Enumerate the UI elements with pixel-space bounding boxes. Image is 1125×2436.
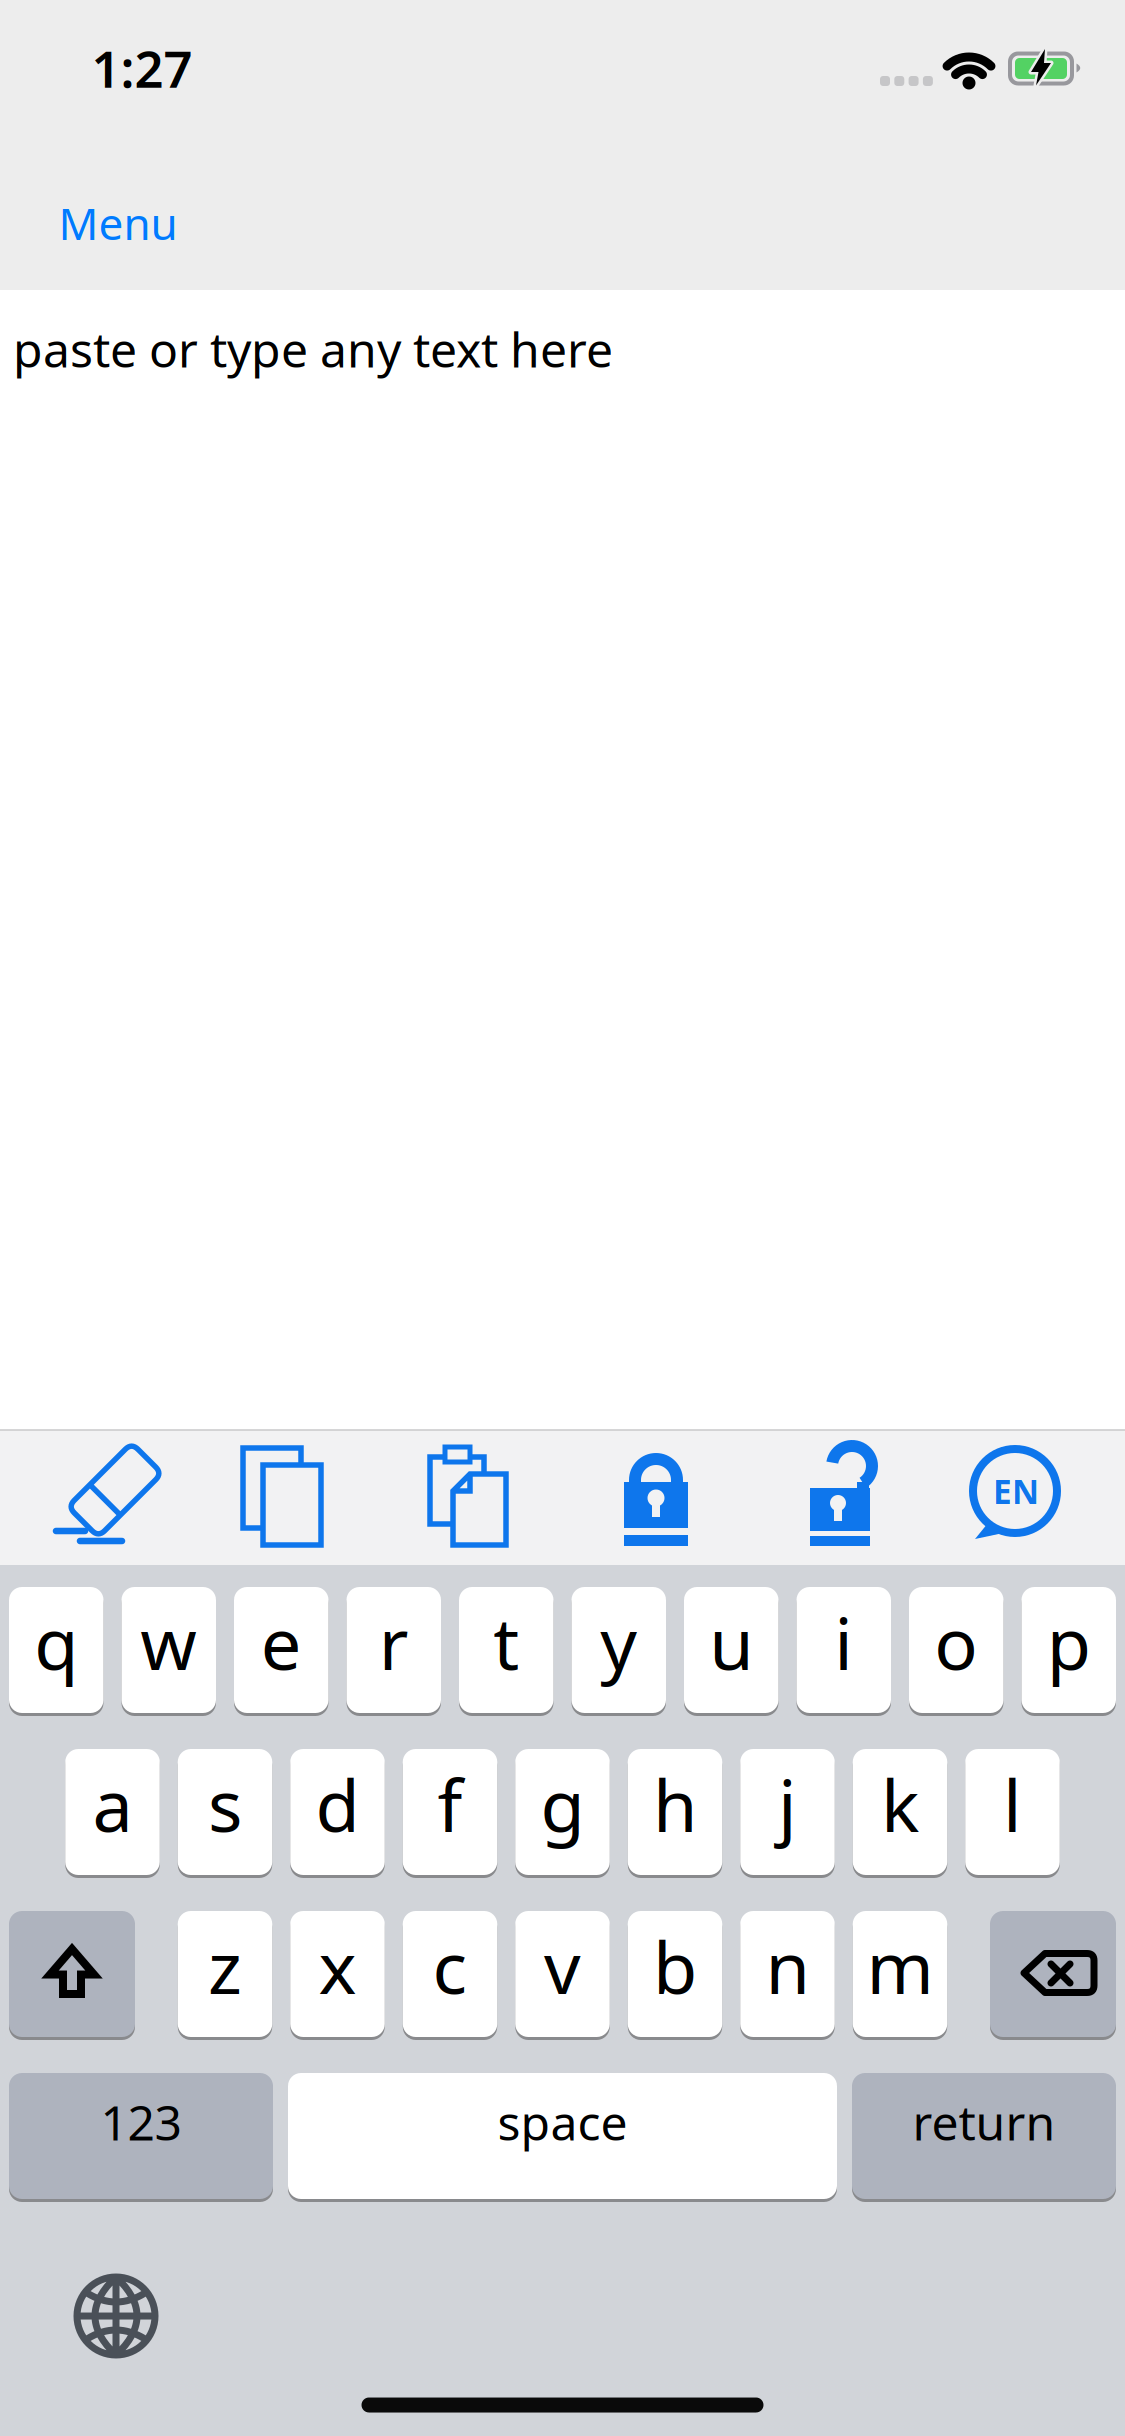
button[interactable]: m xyxy=(853,1909,947,2038)
staticText: l xyxy=(1003,1756,1022,1852)
staticText: p xyxy=(1047,1594,1091,1690)
button[interactable]: i xyxy=(796,1585,891,1714)
staticText: d xyxy=(315,1756,359,1852)
staticText: space xyxy=(497,2090,627,2154)
button[interactable]: a xyxy=(65,1747,160,1876)
staticText: r xyxy=(379,1594,409,1690)
staticText: b xyxy=(653,1918,697,2014)
button[interactable]: Copy xyxy=(226,1436,338,1556)
staticText: j xyxy=(778,1756,797,1852)
staticText: y xyxy=(600,1594,637,1690)
button[interactable]: e xyxy=(234,1585,328,1714)
button[interactable]: z xyxy=(178,1909,272,2038)
button[interactable]: h xyxy=(628,1747,722,1876)
button[interactable]: Language xyxy=(967,1445,1063,1545)
staticText: m xyxy=(866,1918,933,2014)
staticText: n xyxy=(765,1918,809,2014)
staticText: w xyxy=(140,1594,197,1690)
button[interactable]: Menu xyxy=(58,194,177,252)
staticText: g xyxy=(540,1756,584,1852)
button[interactable]: f xyxy=(403,1747,497,1876)
button[interactable]: o xyxy=(909,1585,1003,1714)
button[interactable]: Delete xyxy=(990,1909,1116,2038)
button[interactable]: x xyxy=(290,1909,385,2038)
button[interactable]: space xyxy=(288,2071,837,2200)
staticText: k xyxy=(881,1756,919,1852)
staticText: i xyxy=(834,1594,853,1690)
button[interactable]: Unlock xyxy=(810,1444,874,1546)
staticText: u xyxy=(709,1594,753,1690)
button[interactable]: q xyxy=(9,1585,103,1714)
button[interactable]: l xyxy=(965,1747,1060,1876)
button[interactable]: t xyxy=(459,1585,553,1714)
staticText: e xyxy=(261,1594,302,1690)
staticText: x xyxy=(318,1918,356,2014)
button[interactable]: s xyxy=(178,1747,272,1876)
button[interactable]: n xyxy=(740,1909,835,2038)
staticText: paste or type any text here xyxy=(13,317,613,381)
staticText: return xyxy=(912,2090,1055,2154)
button[interactable]: Next keyboard xyxy=(72,2272,160,2360)
staticText: 123 xyxy=(100,2090,181,2154)
button[interactable]: y xyxy=(571,1585,666,1714)
staticText: 1:27 xyxy=(91,34,192,102)
button[interactable]: r xyxy=(346,1585,441,1714)
button[interactable]: j xyxy=(740,1747,835,1876)
button[interactable]: u xyxy=(684,1585,778,1714)
button[interactable]: 123 xyxy=(9,2071,273,2200)
staticText: s xyxy=(208,1756,242,1852)
staticText: o xyxy=(934,1594,978,1690)
staticText: c xyxy=(432,1918,467,2014)
staticText: q xyxy=(34,1594,78,1690)
staticText: t xyxy=(493,1594,519,1690)
button[interactable]: d xyxy=(290,1747,385,1876)
button[interactable]: v xyxy=(515,1909,610,2038)
staticText: a xyxy=(92,1756,132,1852)
button[interactable]: Paste xyxy=(417,1440,517,1552)
staticText: EN xyxy=(993,1469,1039,1513)
button[interactable]: b xyxy=(628,1909,722,2038)
button[interactable]: c xyxy=(403,1909,497,2038)
button[interactable]: k xyxy=(853,1747,947,1876)
button[interactable]: w xyxy=(121,1585,216,1714)
button[interactable]: Shift xyxy=(9,1909,135,2038)
button[interactable]: Erase xyxy=(40,1424,180,1564)
staticText: v xyxy=(544,1918,581,2014)
staticText: Menu xyxy=(58,194,177,252)
button[interactable]: g xyxy=(515,1747,610,1876)
staticText: z xyxy=(208,1918,242,2014)
staticText: f xyxy=(437,1756,462,1852)
button[interactable]: Lock xyxy=(624,1444,688,1546)
staticText: h xyxy=(653,1756,697,1852)
button[interactable]: return xyxy=(852,2071,1116,2200)
button[interactable]: p xyxy=(1021,1585,1116,1714)
